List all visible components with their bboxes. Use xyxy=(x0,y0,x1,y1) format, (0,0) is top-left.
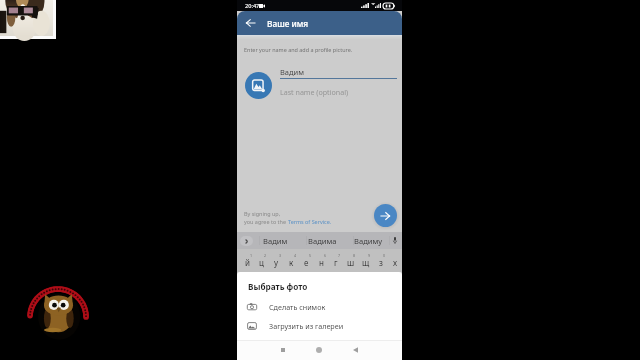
button[interactable]: Вадима xyxy=(299,232,345,249)
staticText: By signing up, xyxy=(244,210,281,217)
staticText: 2 xyxy=(264,253,267,258)
button[interactable]: Add profile picture xyxy=(245,72,272,99)
button[interactable]: Voice input xyxy=(390,236,399,245)
staticText: 5 xyxy=(309,253,312,258)
button[interactable]: Recents xyxy=(269,340,297,360)
staticText: 9 xyxy=(368,253,371,258)
staticText: 1 xyxy=(250,253,253,258)
button[interactable]: Вадим xyxy=(252,232,298,249)
button[interactable]: Terms of Service. xyxy=(288,218,332,225)
button[interactable]: з xyxy=(373,249,388,272)
staticText: ц xyxy=(259,257,264,268)
button[interactable]: Home xyxy=(305,340,333,360)
staticText: 3 xyxy=(279,253,282,258)
staticText: Ваше имя xyxy=(267,18,309,29)
button[interactable]: Continue xyxy=(374,204,397,227)
staticText: ш xyxy=(347,257,355,268)
button[interactable]: Загрузить из галереи xyxy=(237,316,402,335)
staticText: Сделать снимок xyxy=(269,302,326,312)
button[interactable]: н xyxy=(314,249,329,272)
button[interactable]: е xyxy=(299,249,314,272)
staticText: Вадим xyxy=(280,67,305,77)
staticText: к xyxy=(289,257,294,268)
staticText: you agree to the xyxy=(244,218,288,225)
staticText: е xyxy=(304,257,309,268)
staticText: 6 xyxy=(324,253,327,258)
staticText: х xyxy=(393,257,398,268)
staticText: Вадиму xyxy=(354,236,383,246)
button[interactable]: у xyxy=(269,249,284,272)
staticText: щ xyxy=(362,257,370,268)
button[interactable]: Сделать снимок xyxy=(237,297,402,316)
staticText: з xyxy=(379,257,383,268)
staticText: й xyxy=(245,257,250,268)
staticText: г xyxy=(334,257,338,268)
button[interactable]: щ xyxy=(358,249,373,272)
button[interactable]: Back xyxy=(240,13,260,33)
staticText: 8 xyxy=(353,253,356,258)
staticText: Enter your name and add a profile pictur… xyxy=(244,46,353,53)
button[interactable]: ш xyxy=(343,249,358,272)
button[interactable]: й xyxy=(240,249,255,272)
staticText: Загрузить из галереи xyxy=(269,321,344,331)
button[interactable]: х xyxy=(388,249,403,272)
button[interactable]: More suggestions xyxy=(240,236,253,246)
button[interactable]: Вадиму xyxy=(345,232,391,249)
button[interactable]: к xyxy=(284,249,299,272)
staticText: Выбрать фото xyxy=(248,281,308,292)
button[interactable]: г xyxy=(328,249,343,272)
staticText: 0 xyxy=(383,253,386,258)
staticText: Вадима xyxy=(308,236,337,246)
staticText: Last name (optional) xyxy=(280,87,349,97)
staticText: Вадим xyxy=(263,236,288,246)
button[interactable]: Back xyxy=(341,340,369,360)
button[interactable]: ц xyxy=(254,249,269,272)
staticText: н xyxy=(319,257,324,268)
staticText: у xyxy=(274,257,279,268)
staticText: 20:47 xyxy=(245,2,260,10)
staticText: 4 xyxy=(294,253,297,258)
staticText: 7 xyxy=(338,253,341,258)
